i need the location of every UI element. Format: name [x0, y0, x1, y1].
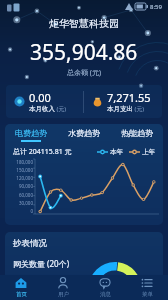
- staticText: 用户: [58, 291, 69, 298]
- staticText: 150,000: [16, 167, 33, 173]
- staticText: 8:59: [150, 3, 162, 11]
- staticText: 网关数量 (20个): [13, 258, 70, 269]
- button[interactable]: 热能趋势: [110, 124, 163, 145]
- button[interactable]: 7,271.55: [84, 90, 162, 113]
- staticText: (元): [133, 105, 145, 113]
- staticText: 本年: [110, 148, 123, 156]
- staticText: 水费趋势: [68, 128, 100, 138]
- button[interactable]: 水费趋势: [57, 124, 110, 145]
- button[interactable]: 菜单: [126, 275, 168, 300]
- staticText: 本月支出: [107, 105, 133, 113]
- staticText: 总余额 (元): [67, 68, 102, 78]
- staticText: 本月收入: [29, 105, 55, 113]
- staticText: 首页: [16, 291, 27, 298]
- button[interactable]: 消息: [84, 275, 126, 300]
- staticText: 炬华智慧科技园: [49, 17, 119, 30]
- staticText: 7,271.55: [107, 90, 151, 105]
- staticText: 180,000: [16, 159, 33, 165]
- staticText: 总计 204115.81 元: [13, 147, 72, 157]
- staticText: 热能趋势: [121, 128, 153, 138]
- staticText: 0: [30, 208, 33, 214]
- staticText: 抄表情况: [13, 238, 47, 249]
- staticText: 电费趋势: [15, 128, 47, 138]
- staticText: (元): [55, 105, 67, 113]
- staticText: 上年: [142, 148, 155, 156]
- staticText: 90,000: [18, 183, 33, 189]
- button[interactable]: 用户: [42, 275, 84, 300]
- staticText: 30,000: [18, 200, 33, 206]
- button[interactable]: 0.00: [6, 90, 83, 113]
- staticText: 355,904.86: [30, 38, 138, 67]
- staticText: 菜单: [142, 291, 153, 298]
- staticText: 0.00: [29, 90, 51, 105]
- button[interactable]: 首页: [0, 275, 42, 300]
- staticText: 120,000: [16, 175, 33, 181]
- staticText: 60,000: [18, 192, 33, 198]
- button[interactable]: 电费趋势: [5, 124, 57, 145]
- staticText: 消息: [100, 291, 111, 298]
